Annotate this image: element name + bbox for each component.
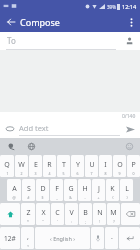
button[interactable]: A	[7, 179, 21, 201]
button[interactable]: Handwriting	[5, 140, 17, 152]
button[interactable]: R	[43, 155, 56, 177]
staticText: '	[57, 219, 58, 224]
staticText: H	[82, 184, 88, 194]
button[interactable]: J	[92, 179, 105, 201]
button[interactable]: X	[36, 203, 50, 225]
staticText: 9	[118, 171, 121, 176]
staticText: E	[34, 160, 38, 170]
button[interactable]: Emoji keyboard	[123, 140, 135, 152]
button[interactable]: N	[93, 203, 106, 225]
button[interactable]: G	[64, 179, 77, 201]
staticText: ᵍ	[27, 243, 29, 248]
staticText: +	[97, 195, 100, 200]
staticText: ?	[113, 219, 115, 224]
button[interactable]: H	[78, 179, 91, 201]
staticText: #	[27, 195, 30, 200]
button[interactable]: Shift	[0, 203, 20, 225]
staticText: Compose	[20, 16, 60, 28]
staticText: D	[40, 184, 46, 194]
button[interactable]: C	[51, 203, 64, 225]
staticText: J	[98, 184, 100, 194]
staticText: To	[7, 35, 16, 46]
staticText: 8	[104, 171, 107, 176]
staticText: 12:14	[122, 3, 137, 10]
button[interactable]: ,	[21, 227, 34, 249]
staticText: $	[41, 195, 44, 200]
button[interactable]: D	[36, 179, 49, 201]
button[interactable]: 12#	[0, 227, 20, 249]
button[interactable]: Language	[25, 140, 37, 152]
button[interactable]: I	[99, 155, 112, 177]
staticText: T	[62, 160, 66, 170]
staticText: P	[131, 160, 136, 170]
button[interactable]: Send	[124, 123, 136, 135]
button[interactable]: P	[127, 155, 140, 177]
button[interactable]: S	[22, 179, 35, 201]
staticText: S	[27, 184, 31, 194]
staticText: V	[69, 208, 74, 218]
button[interactable]: Backspace	[121, 203, 140, 225]
staticText: 0/140	[122, 113, 136, 120]
button[interactable]: More options	[124, 15, 138, 29]
button[interactable]: O	[113, 155, 126, 177]
staticText: 2	[20, 171, 23, 176]
button[interactable]: B	[79, 203, 92, 225]
button[interactable]: Y	[71, 155, 84, 177]
staticText: .	[111, 232, 113, 242]
staticText: "	[42, 219, 44, 224]
button[interactable]: Space	[35, 227, 90, 249]
button[interactable]: T	[57, 155, 70, 177]
staticText: !	[99, 219, 100, 224]
button[interactable]: U	[85, 155, 98, 177]
staticText: 7	[90, 171, 93, 176]
staticText: N	[97, 208, 103, 218]
button[interactable]: E	[29, 155, 42, 177]
staticText: 3	[34, 171, 37, 176]
staticText: I	[104, 160, 107, 170]
staticText: 12#	[4, 234, 16, 243]
staticText: B	[83, 208, 88, 218]
staticText: U	[89, 160, 95, 170]
staticText: ‹ English ›	[50, 235, 75, 242]
staticText: O	[117, 160, 123, 170]
staticText: G	[68, 184, 74, 194]
button[interactable]: L	[120, 179, 133, 201]
button[interactable]: To	[0, 32, 140, 50]
staticText: ;	[85, 219, 86, 224]
button[interactable]: Emoji	[4, 123, 16, 135]
staticText: Add text	[19, 123, 49, 133]
staticText: M	[110, 208, 117, 218]
staticText: K	[110, 184, 115, 194]
staticText: Y	[76, 160, 80, 170]
button[interactable]: Enter	[119, 227, 140, 249]
staticText: *	[27, 219, 29, 224]
button[interactable]: .	[105, 227, 118, 249]
button[interactable]: W	[15, 155, 28, 177]
staticText: )	[126, 195, 128, 200]
button[interactable]: Z	[21, 203, 35, 225]
staticText: @	[12, 195, 16, 200]
staticText: _	[56, 195, 58, 200]
button[interactable]: Q	[0, 155, 14, 177]
staticText: 4	[48, 171, 51, 176]
staticText: ,	[27, 232, 29, 242]
button[interactable]: V	[65, 203, 78, 225]
staticText: R	[47, 160, 52, 170]
staticText: X	[41, 208, 46, 218]
staticText: Q	[4, 160, 10, 170]
button[interactable]: Voice input	[91, 227, 104, 249]
button[interactable]: K	[106, 179, 119, 201]
button[interactable]: M	[107, 203, 120, 225]
staticText: 39%	[107, 4, 116, 10]
staticText: L	[125, 184, 129, 194]
staticText: (	[112, 195, 114, 200]
staticText: A	[12, 184, 17, 194]
staticText: &	[69, 195, 72, 200]
staticText: C	[55, 208, 60, 218]
staticText: 5	[62, 171, 65, 176]
button[interactable]: Add contact	[124, 35, 136, 47]
button[interactable]: Back	[4, 15, 18, 29]
staticText: :	[71, 219, 72, 224]
staticText: 6	[76, 171, 79, 176]
button[interactable]: F	[50, 179, 63, 201]
